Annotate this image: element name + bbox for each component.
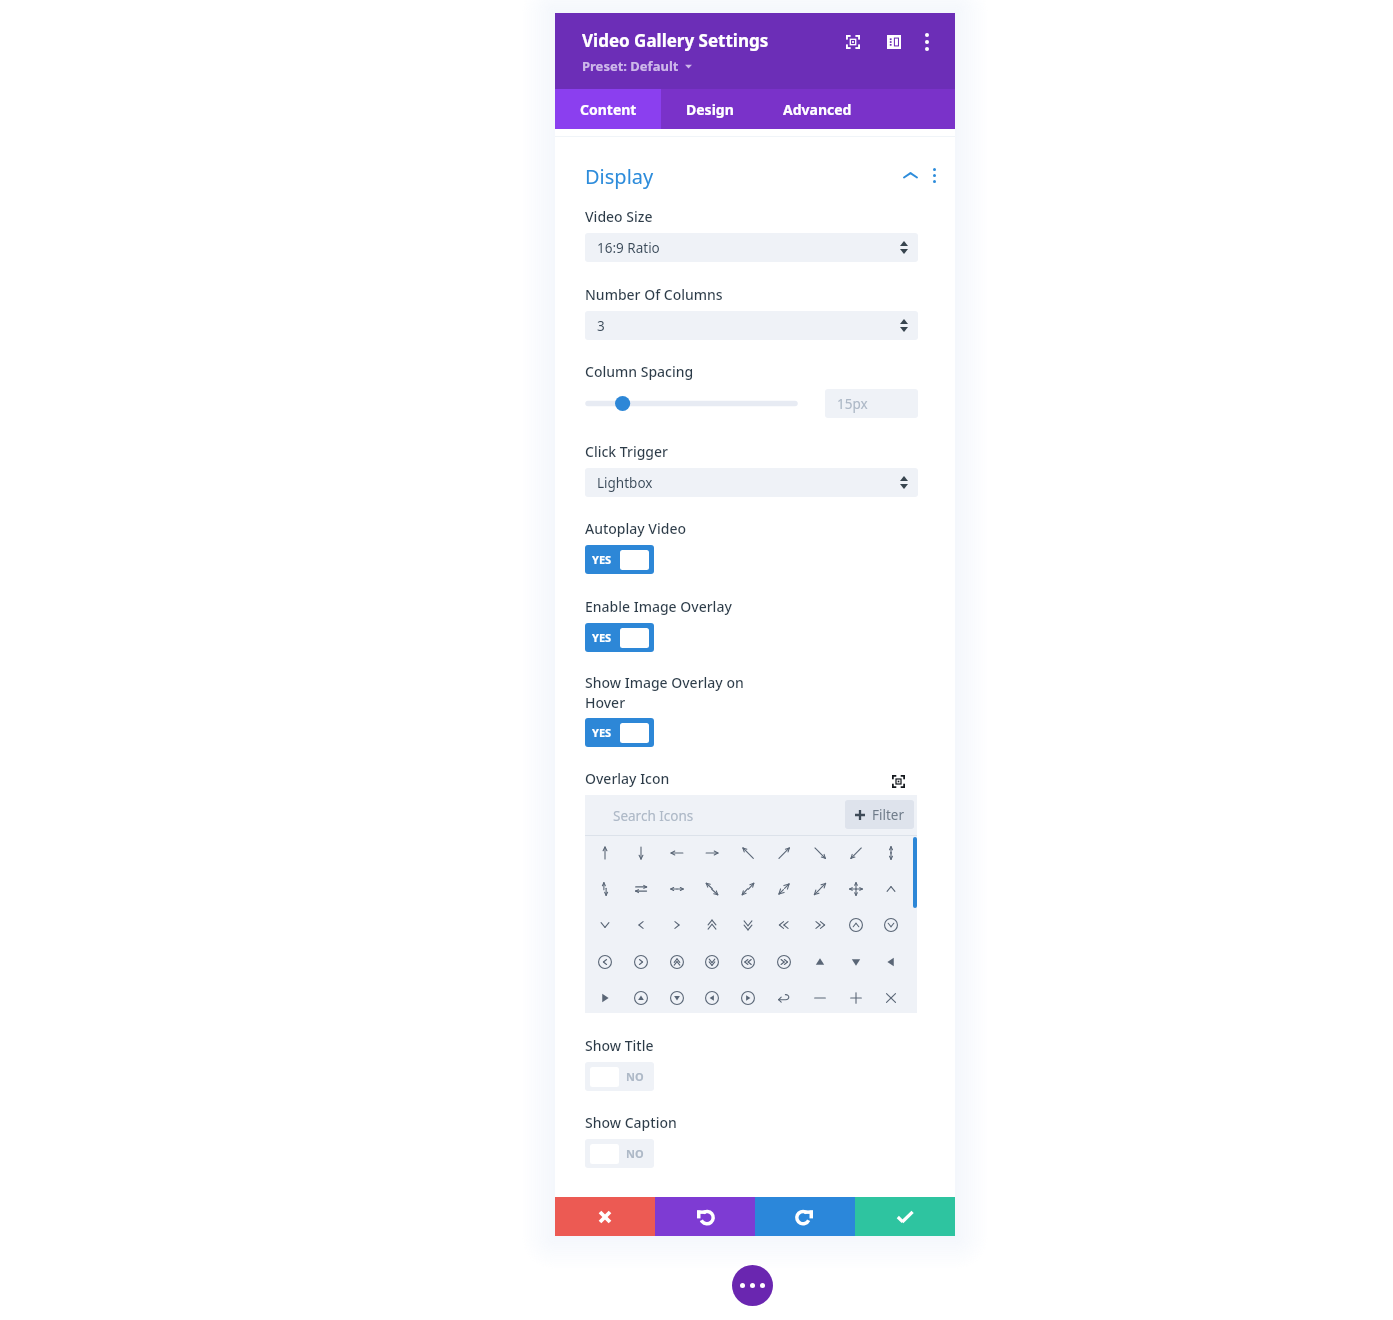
button[interactable]: Icon 32 (730, 944, 766, 980)
button[interactable]: Icon 8 (838, 835, 874, 871)
button[interactable]: 16:9 Ratio (585, 233, 918, 262)
staticText: Display (585, 163, 654, 190)
button[interactable]: Icon 10 (587, 871, 623, 907)
button[interactable]: Icon 16 (802, 871, 838, 907)
button[interactable]: Section options (923, 164, 945, 186)
button[interactable]: YES (585, 623, 654, 652)
button[interactable]: Icon 9 (873, 835, 909, 871)
button[interactable]: Lightbox (585, 468, 918, 497)
button[interactable]: Icon 15 (766, 871, 802, 907)
button[interactable]: Icon 44 (838, 980, 874, 1016)
button[interactable]: Icon 13 (694, 871, 730, 907)
button[interactable]: NO (585, 1062, 654, 1091)
button[interactable]: Icon 18 (873, 871, 909, 907)
staticText: Show Image Overlay on (585, 673, 744, 692)
staticText: Preset: Default (582, 57, 679, 75)
staticText: Autoplay Video (585, 519, 687, 538)
button[interactable]: Content (555, 89, 661, 129)
button[interactable]: Icon 34 (802, 944, 838, 980)
button[interactable]: Icon 12 (659, 871, 695, 907)
button[interactable]: Icon 11 (623, 871, 659, 907)
button[interactable]: Icon 23 (730, 907, 766, 943)
button[interactable] (585, 389, 798, 418)
button[interactable]: Undo (655, 1197, 755, 1236)
button[interactable]: Icon 33 (766, 944, 802, 980)
button[interactable]: Focus module (839, 28, 867, 56)
staticText: NO (626, 1069, 644, 1084)
button[interactable]: Save (855, 1197, 955, 1236)
button[interactable]: Icon 31 (694, 944, 730, 980)
button[interactable]: Icon 30 (659, 944, 695, 980)
button[interactable]: Redo (755, 1197, 855, 1236)
button[interactable]: Icon 1 (587, 835, 623, 871)
button[interactable]: Icon 27 (873, 907, 909, 943)
staticText: Enable Image Overlay (585, 597, 732, 616)
button[interactable]: Icon 5 (730, 835, 766, 871)
staticText: Video Size (585, 207, 653, 226)
staticText: 15px (837, 395, 868, 413)
button[interactable]: Collapse section (899, 164, 921, 186)
button[interactable]: Icon 22 (694, 907, 730, 943)
staticText: YES (592, 725, 612, 740)
button[interactable]: Focus overlay icon (887, 770, 909, 792)
button[interactable]: Cancel (555, 1197, 655, 1236)
button[interactable]: 15px (825, 389, 918, 418)
staticText: Filter (872, 806, 905, 824)
button[interactable]: Icon 17 (838, 871, 874, 907)
staticText: Advanced (783, 100, 852, 119)
staticText: Content (580, 100, 637, 119)
staticText: NO (626, 1146, 644, 1161)
staticText: Video Gallery Settings (582, 29, 769, 52)
button[interactable]: Icon 19 (587, 907, 623, 943)
button[interactable]: Icon 39 (659, 980, 695, 1016)
button[interactable]: Icon 36 (873, 944, 909, 980)
button[interactable]: Icon 25 (802, 907, 838, 943)
staticText: 3 (597, 317, 605, 335)
button[interactable]: Change layout (880, 28, 908, 56)
button[interactable]: Icon 14 (730, 871, 766, 907)
button[interactable]: Icon 35 (838, 944, 874, 980)
staticText: YES (592, 552, 612, 567)
button[interactable]: More actions (732, 1265, 773, 1306)
button[interactable]: Icon 42 (766, 980, 802, 1016)
staticText: Lightbox (597, 474, 653, 492)
button[interactable]: Search Icons (585, 795, 843, 835)
button[interactable]: Icon 21 (659, 907, 695, 943)
staticText: Design (686, 100, 734, 119)
button[interactable]: NO (585, 1139, 654, 1168)
button[interactable]: Icon 2 (623, 835, 659, 871)
button[interactable]: Design (661, 89, 758, 129)
button[interactable]: YES (585, 718, 654, 747)
staticText: Number Of Columns (585, 285, 723, 304)
button[interactable]: Icon 3 (659, 835, 695, 871)
button[interactable]: Icon 40 (694, 980, 730, 1016)
staticText: YES (592, 630, 612, 645)
staticText: Click Trigger (585, 442, 668, 461)
button[interactable]: Icon 43 (802, 980, 838, 1016)
button[interactable]: Icon 20 (623, 907, 659, 943)
button[interactable]: YES (585, 545, 654, 574)
staticText: Show Caption (585, 1113, 677, 1132)
staticText: Column Spacing (585, 362, 694, 381)
button[interactable]: Icon 41 (730, 980, 766, 1016)
button[interactable]: More options (913, 28, 941, 56)
button[interactable]: Icon 4 (694, 835, 730, 871)
staticText: Overlay Icon (585, 769, 670, 788)
staticText: Show Title (585, 1036, 654, 1055)
button[interactable]: Icon 24 (766, 907, 802, 943)
button[interactable]: Advanced (758, 89, 877, 129)
button[interactable]: Icon 6 (766, 835, 802, 871)
button[interactable]: Icon 38 (623, 980, 659, 1016)
button[interactable]: Icon 29 (623, 944, 659, 980)
staticText: Hover (585, 693, 626, 712)
button[interactable]: Icon 28 (587, 944, 623, 980)
button[interactable]: Icon 37 (587, 980, 623, 1016)
button[interactable]: Icon 45 (873, 980, 909, 1016)
staticText: Search Icons (613, 807, 694, 825)
staticText: 16:9 Ratio (597, 239, 660, 257)
button[interactable]: Icon 7 (802, 835, 838, 871)
button[interactable]: Filter (845, 800, 914, 829)
button[interactable]: Icon 26 (838, 907, 874, 943)
button[interactable]: 3 (585, 311, 918, 340)
